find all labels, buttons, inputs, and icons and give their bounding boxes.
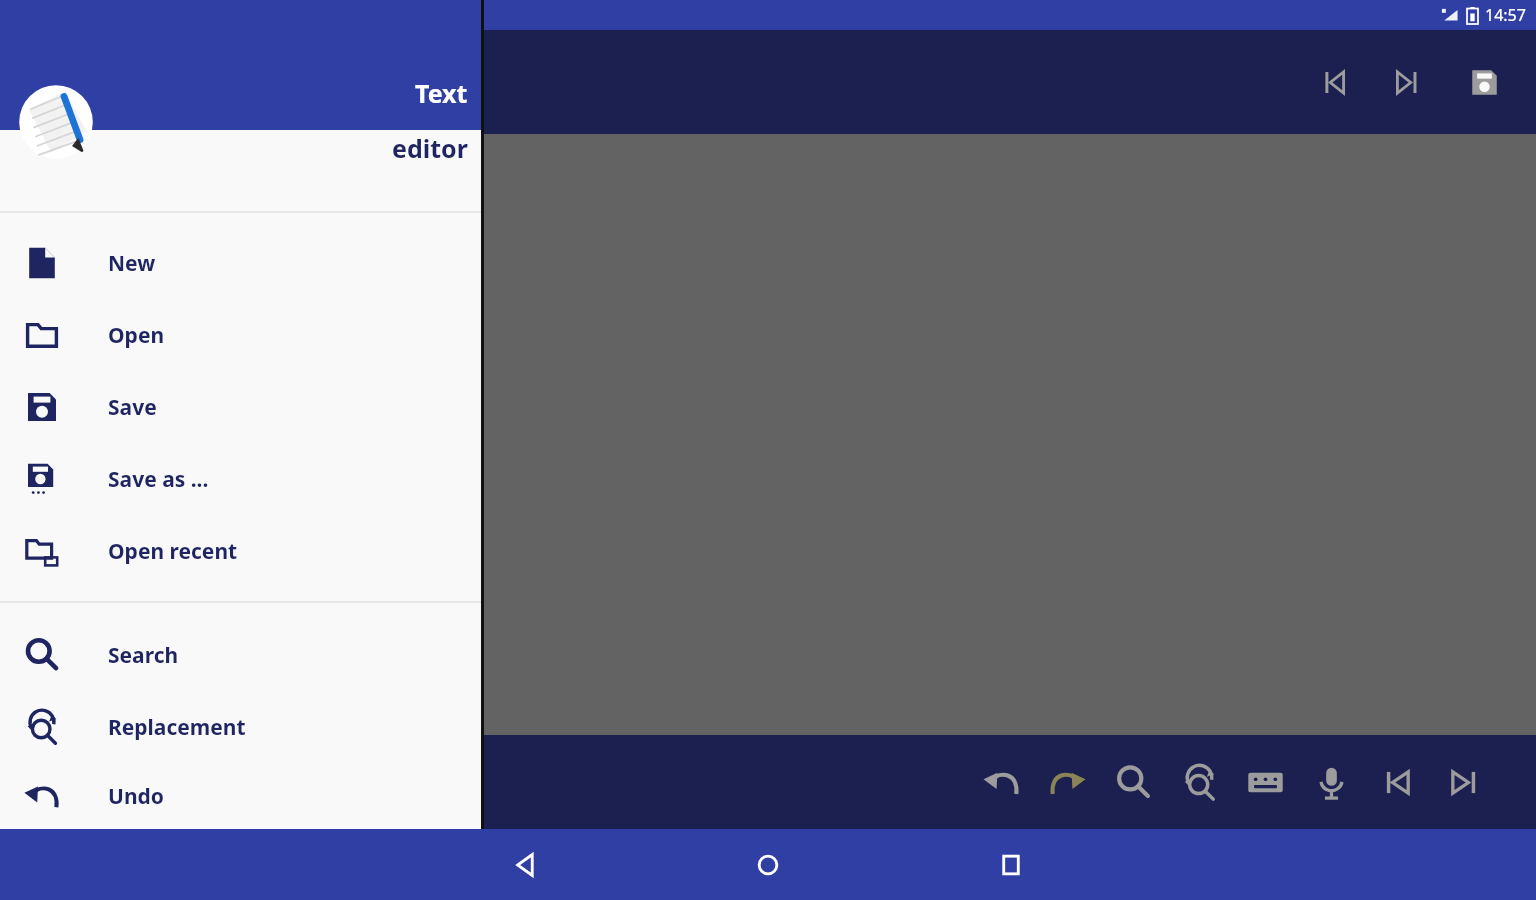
button[interactable]: Recent apps — [985, 839, 1037, 891]
staticText: New — [108, 249, 156, 278]
button[interactable]: Previous — [1364, 749, 1430, 815]
button[interactable]: Replace — [1166, 749, 1232, 815]
button[interactable]: New — [0, 227, 481, 299]
staticText: Save as ... — [108, 465, 209, 494]
button[interactable]: Undo — [968, 749, 1034, 815]
button[interactable]: Undo — [0, 763, 481, 829]
button[interactable]: Next — [1430, 749, 1496, 815]
staticText: Search — [108, 641, 179, 670]
button[interactable]: Keyboard — [1232, 749, 1298, 815]
button[interactable]: Redo — [1034, 749, 1100, 815]
button[interactable]: Voice input — [1298, 749, 1364, 815]
staticText: Open recent — [108, 537, 238, 566]
button[interactable]: Next — [1378, 54, 1434, 110]
button[interactable]: Text editor logo — [16, 82, 96, 162]
button[interactable]: Search — [1100, 749, 1166, 815]
staticText: Replacement — [108, 713, 246, 742]
staticText: Undo — [108, 782, 164, 811]
staticText: Open — [108, 321, 165, 350]
button[interactable]: Replacement — [0, 691, 481, 763]
staticText: Save — [108, 393, 157, 422]
button[interactable]: Save as ... — [0, 443, 481, 515]
button[interactable]: Home — [742, 839, 794, 891]
staticText: Text — [415, 76, 468, 110]
button[interactable]: Open recent — [0, 515, 481, 587]
staticText: editor — [392, 131, 468, 165]
button[interactable]: Search — [0, 619, 481, 691]
button[interactable]: Back — [500, 839, 552, 891]
button[interactable]: Open — [0, 299, 481, 371]
button[interactable]: Previous — [1306, 54, 1362, 110]
staticText: 14:57 — [1485, 4, 1526, 26]
button[interactable]: Save — [0, 371, 481, 443]
button[interactable]: Save — [1456, 54, 1512, 110]
